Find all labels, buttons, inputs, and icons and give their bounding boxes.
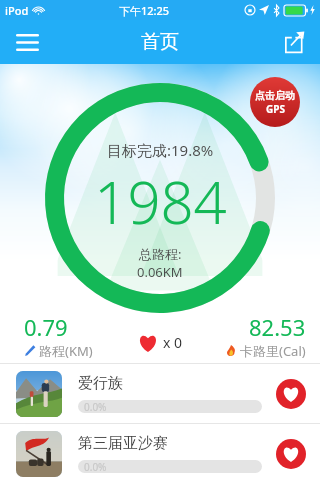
staticText: x 0 <box>163 333 183 352</box>
staticText: 首页 <box>141 30 179 54</box>
button[interactable]: Menu <box>0 20 54 64</box>
button[interactable]: Favorite <box>276 439 306 469</box>
staticText: 82.53 <box>249 312 306 342</box>
button[interactable]: 82.53 <box>225 312 306 360</box>
button[interactable]: 点击启动 <box>250 77 300 127</box>
staticText: 路程(KM) <box>39 342 93 360</box>
staticText: 0.0% <box>84 460 107 473</box>
staticText: 0.0% <box>84 400 107 413</box>
staticText: iPod <box>5 3 29 18</box>
button[interactable]: 第三届亚沙赛 <box>0 424 320 480</box>
staticText: 目标完成:19.8% <box>107 140 214 160</box>
button[interactable]: 爱行族 <box>0 364 320 423</box>
staticText: 0.06KM <box>137 263 183 281</box>
button[interactable]: Favorite <box>276 379 306 409</box>
staticText: 0.79 <box>24 312 68 342</box>
staticText: 点击启动 <box>255 89 295 102</box>
staticText: 总路程: <box>139 245 182 263</box>
staticText: 卡路里(Cal) <box>240 342 306 360</box>
staticText: GPS <box>266 102 285 116</box>
staticText: 爱行族 <box>78 374 123 393</box>
staticText: 1984 <box>94 162 227 241</box>
staticText: 下午12:25 <box>119 3 170 18</box>
button[interactable]: 0.79 <box>24 312 93 360</box>
button[interactable]: x 0 <box>138 333 183 352</box>
staticText: 第三届亚沙赛 <box>78 434 168 453</box>
button[interactable]: Share <box>268 20 320 64</box>
